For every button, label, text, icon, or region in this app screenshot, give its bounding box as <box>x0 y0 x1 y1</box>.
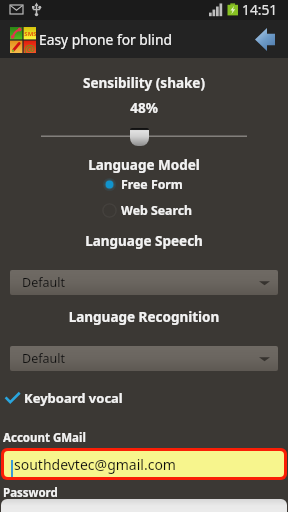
staticText: SMS <box>24 30 36 38</box>
button[interactable]: Keyboard vocal <box>5 389 288 407</box>
staticText: Language Model <box>0 156 288 174</box>
staticText: Language Recognition <box>0 308 288 326</box>
staticText: Default <box>22 350 65 367</box>
staticText: 14:51 <box>242 0 278 19</box>
button[interactable] <box>1 499 287 512</box>
button[interactable]: Free Form <box>102 176 183 192</box>
button[interactable]: southdevtec@gmail.com <box>4 451 284 477</box>
button[interactable] <box>0 126 288 148</box>
button[interactable]: Default <box>10 346 278 371</box>
staticText: @ <box>24 41 36 53</box>
button[interactable]: Default <box>10 270 278 295</box>
button[interactable]: Web Search <box>102 202 193 218</box>
staticText: Web Search <box>121 202 193 218</box>
staticText: Sensibility (shake) <box>0 74 288 92</box>
staticText: Easy phone for blind <box>39 30 172 49</box>
staticText: Keyboard vocal <box>24 389 123 407</box>
staticText: Free Form <box>121 176 183 192</box>
staticText: southdevtec@gmail.com <box>14 455 176 474</box>
staticText: Account GMail <box>3 430 86 446</box>
staticText: Default <box>22 274 65 291</box>
staticText: Language Speech <box>0 232 288 250</box>
button[interactable]: Back <box>245 20 285 58</box>
staticText: 48% <box>0 99 288 117</box>
staticText: Password <box>3 485 58 501</box>
